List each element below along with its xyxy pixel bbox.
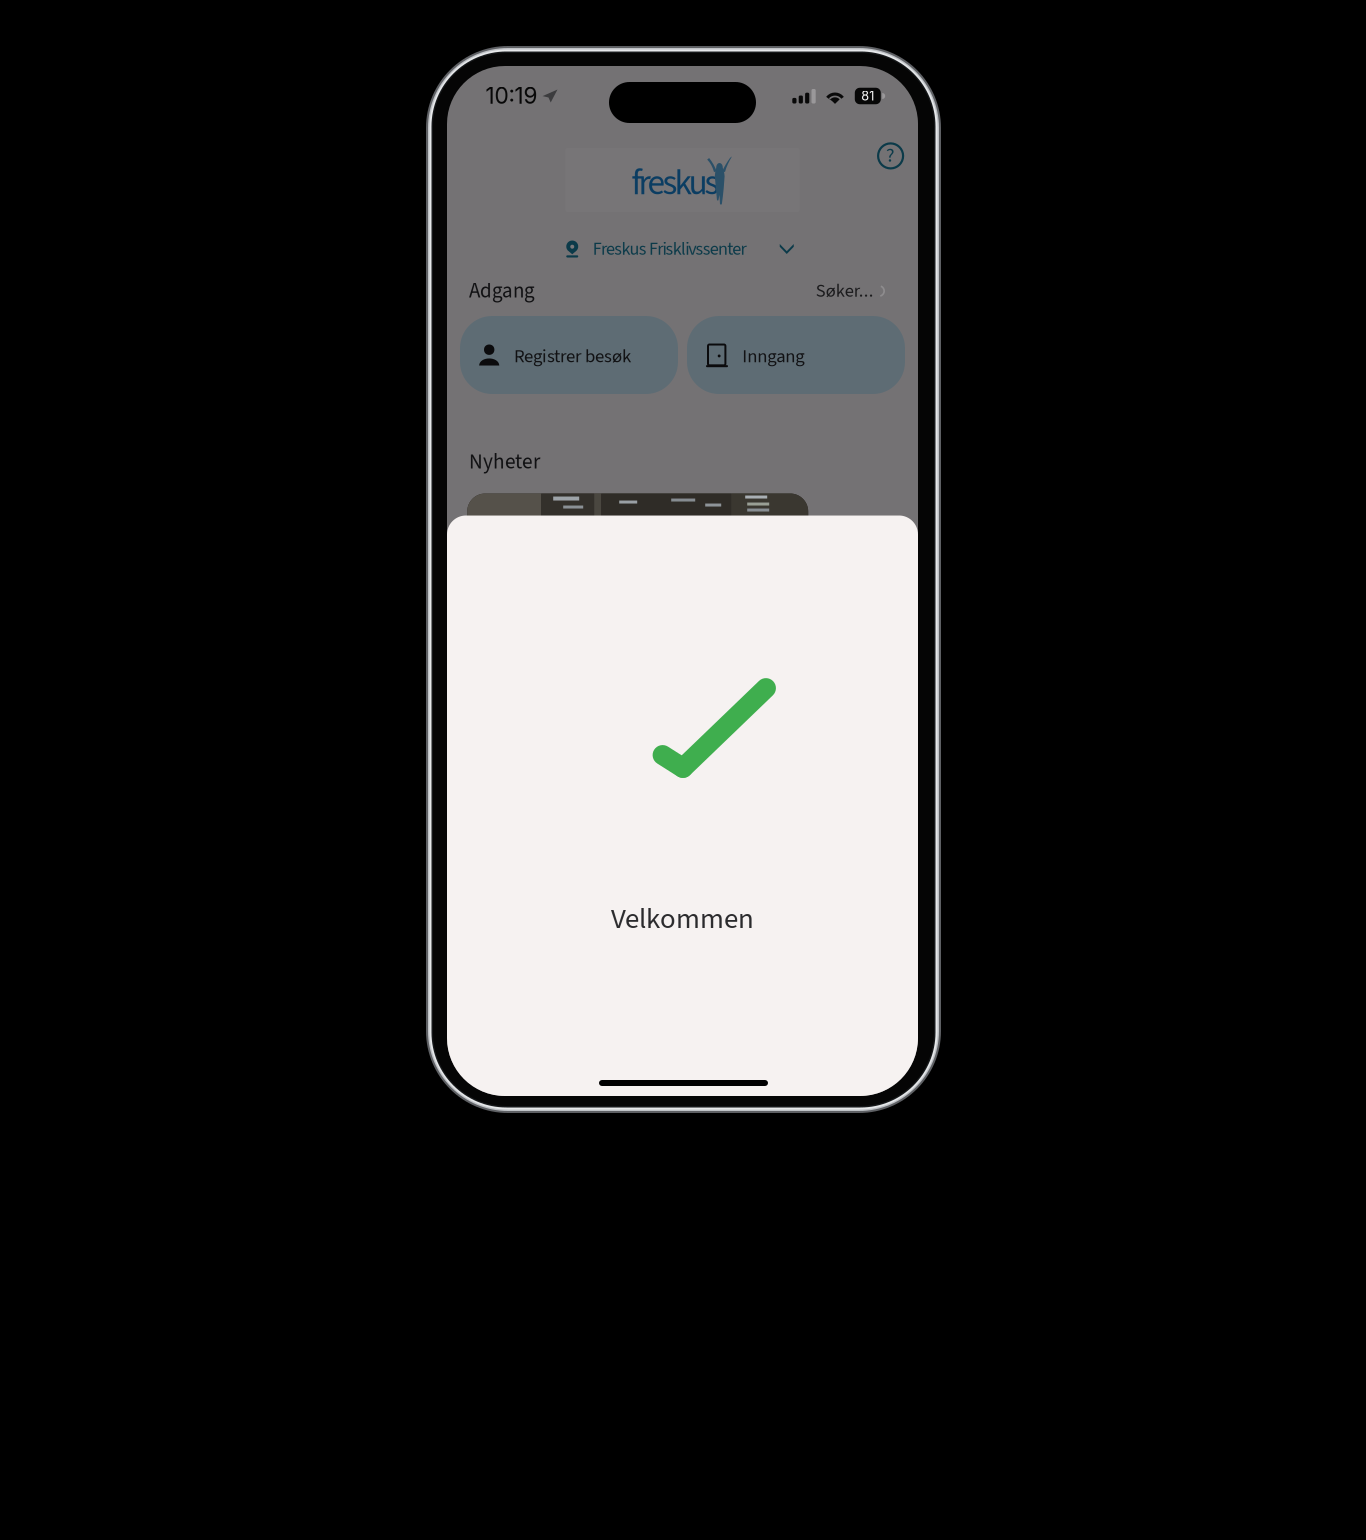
button[interactable]: Inngang [687,316,905,394]
staticText: Velkommen [611,898,754,939]
staticText: Søker... [816,278,874,304]
staticText: 81 [861,88,874,104]
staticText: Adgang [469,276,535,306]
staticText: Registrer besøk [514,343,631,370]
staticText: freskus [631,158,719,208]
staticText: Inngang [742,343,804,370]
button[interactable]: Help [872,137,910,175]
staticText: Freskus Frisklivssenter [593,236,746,262]
button[interactable]: Registrer besøk [460,316,678,394]
button[interactable]: Freskus Frisklivssenter [566,234,794,264]
staticText: ? [886,141,895,170]
staticText: Nyheter [469,447,540,477]
staticText: 10:19 [485,82,537,109]
